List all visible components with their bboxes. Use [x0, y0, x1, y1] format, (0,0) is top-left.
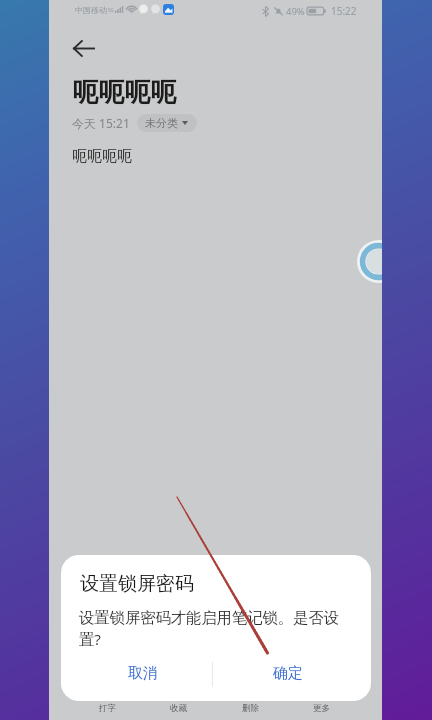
- staticText: 49%: [286, 5, 305, 18]
- staticText: 更多: [313, 703, 330, 714]
- button[interactable]: 未分类: [137, 114, 197, 132]
- button[interactable]: 删除: [224, 698, 276, 718]
- staticText: 5G: [108, 7, 114, 13]
- staticText: 收藏: [170, 703, 187, 714]
- staticText: 确定: [273, 664, 303, 683]
- staticText: 呃呃呃呃: [72, 76, 176, 109]
- staticText: 15:22: [331, 4, 357, 18]
- staticText: 设置锁屏密码: [80, 572, 194, 596]
- button[interactable]: Smart assistant: [357, 240, 382, 283]
- staticText: 取消: [128, 664, 158, 683]
- button[interactable]: 收藏: [152, 698, 204, 718]
- staticText: 中国移动: [75, 5, 107, 15]
- staticText: 未分类: [145, 116, 178, 130]
- staticText: 设置锁屏密码才能启用笔记锁。是否设置?: [79, 608, 349, 650]
- staticText: 呃呃呃呃: [72, 147, 132, 166]
- staticText: 今天 15:21: [72, 115, 130, 131]
- staticText: 删除: [242, 703, 259, 714]
- staticText: 打字: [99, 703, 116, 714]
- button[interactable]: 更多: [295, 698, 347, 718]
- button[interactable]: 取消: [67, 649, 218, 699]
- button[interactable]: Back: [61, 26, 105, 70]
- button[interactable]: 打字: [81, 698, 133, 718]
- button[interactable]: 确定: [212, 649, 363, 699]
